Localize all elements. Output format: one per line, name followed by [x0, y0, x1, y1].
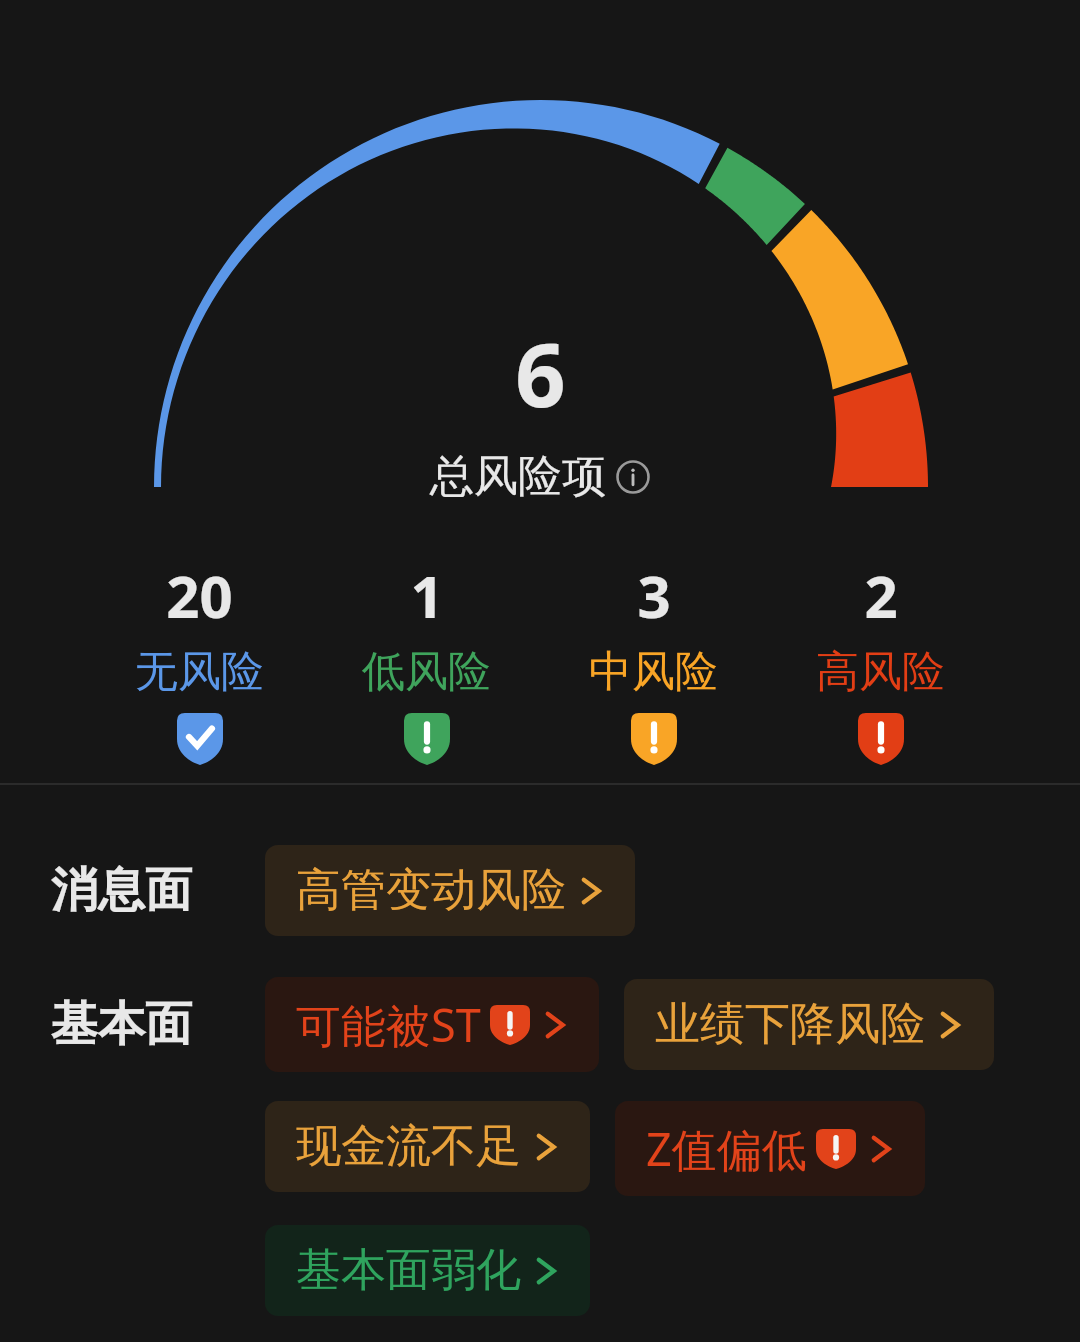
staticText: 业绩下降风险: [655, 996, 925, 1053]
button[interactable]: 3: [540, 556, 767, 765]
button[interactable]: 高管变动风险: [265, 845, 635, 936]
staticText: 消息面: [51, 861, 192, 920]
staticText: 总风险项: [430, 449, 606, 504]
button[interactable]: Z值偏低: [615, 1101, 925, 1196]
button[interactable]: 业绩下降风险: [624, 979, 994, 1070]
button[interactable]: 20: [86, 556, 313, 765]
staticText: 无风险: [135, 645, 264, 699]
button[interactable]: 现金流不足: [265, 1101, 590, 1192]
staticText: 3: [637, 556, 671, 635]
staticText: 可能被ST: [296, 994, 481, 1055]
staticText: 现金流不足: [296, 1118, 521, 1175]
staticText: 1: [410, 556, 444, 635]
staticText: Z值偏低: [646, 1118, 807, 1179]
button[interactable]: 2: [767, 556, 994, 765]
staticText: 6: [515, 313, 566, 433]
button[interactable]: 基本面弱化: [265, 1225, 590, 1316]
staticText: 20: [166, 556, 233, 635]
button[interactable]: 说明: [616, 460, 650, 494]
staticText: 高管变动风险: [296, 862, 566, 919]
staticText: 基本面弱化: [296, 1242, 521, 1299]
staticText: 中风险: [589, 645, 718, 699]
staticText: 低风险: [362, 645, 491, 699]
button[interactable]: 可能被ST: [265, 977, 599, 1072]
staticText: 基本面: [51, 995, 192, 1054]
staticText: 高风险: [816, 645, 945, 699]
button[interactable]: 1: [313, 556, 540, 765]
staticText: 2: [864, 556, 898, 635]
